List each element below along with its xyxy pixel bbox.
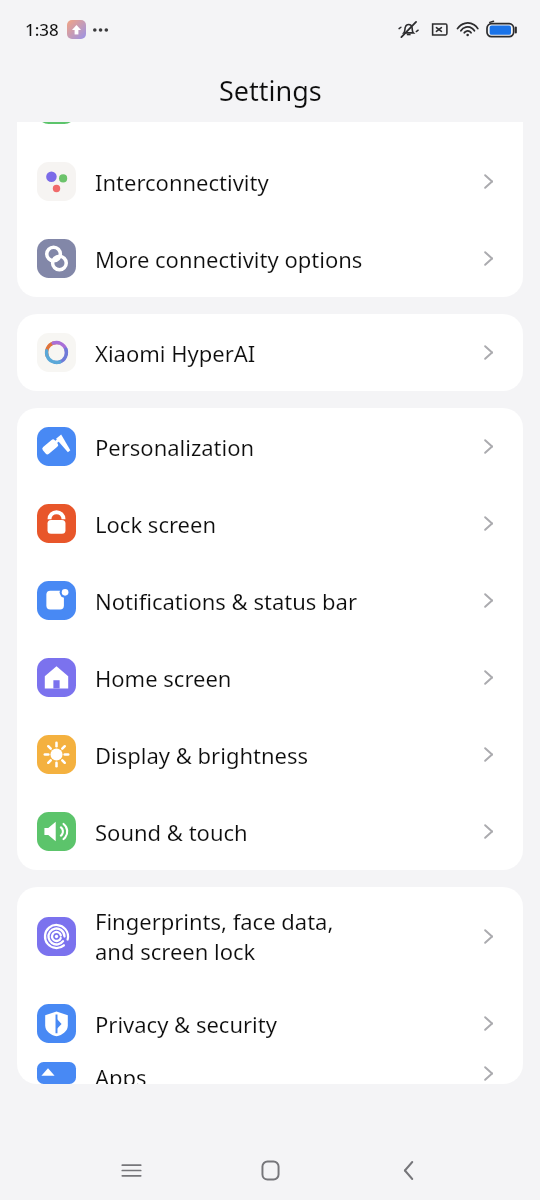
button[interactable]: Mobile networks: [17, 122, 523, 143]
button[interactable]: Lock screen: [17, 485, 523, 562]
button[interactable]: Notifications & status bar: [17, 562, 523, 639]
button[interactable]: Fingerprints, face data, and screen lock: [17, 887, 523, 985]
button[interactable]: Privacy & security: [17, 985, 523, 1062]
button[interactable]: Personalization: [17, 408, 523, 485]
staticText: Xiaomi HyperAI: [95, 338, 256, 368]
button[interactable]: Recents: [108, 1147, 154, 1193]
staticText: Apps: [95, 1062, 147, 1084]
staticText: 1:38: [25, 18, 59, 41]
button[interactable]: Back: [386, 1147, 432, 1193]
staticText: Lock screen: [95, 509, 217, 539]
button[interactable]: Interconnectivity: [17, 143, 523, 220]
staticText: Interconnectivity: [95, 167, 269, 197]
staticText: Personalization: [95, 432, 255, 462]
staticText: Settings: [219, 72, 322, 109]
staticText: Fingerprints, face data, and screen lock: [95, 906, 334, 967]
staticText: Privacy & security: [95, 1009, 277, 1039]
staticText: Sound & touch: [95, 817, 248, 847]
button[interactable]: Apps: [17, 1062, 523, 1084]
button[interactable]: Xiaomi HyperAI: [17, 314, 523, 391]
staticText: Notifications & status bar: [95, 586, 357, 616]
button[interactable]: Home: [247, 1147, 293, 1193]
staticText: Home screen: [95, 663, 232, 693]
staticText: Display & brightness: [95, 740, 309, 770]
button[interactable]: Home screen: [17, 639, 523, 716]
button[interactable]: Display & brightness: [17, 716, 523, 793]
button[interactable]: Sound & touch: [17, 793, 523, 870]
button[interactable]: More connectivity options: [17, 220, 523, 297]
staticText: More connectivity options: [95, 244, 363, 274]
